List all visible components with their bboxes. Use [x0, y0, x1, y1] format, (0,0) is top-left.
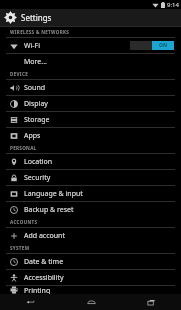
button[interactable]: Backup & reset [0, 202, 181, 217]
staticText: Add account [24, 231, 65, 241]
staticText: Sound [24, 83, 46, 93]
button[interactable]: Settings [0, 9, 181, 26]
button[interactable]: Recent apps [121, 294, 181, 310]
staticText: Accessibility [24, 273, 64, 283]
staticText: SYSTEM [10, 245, 30, 251]
button[interactable]: Security [0, 170, 181, 185]
button[interactable]: More... [0, 54, 181, 69]
button[interactable]: Home [61, 294, 121, 310]
staticText: WIRELESS & NETWORKS [10, 29, 70, 35]
staticText: Security [24, 173, 51, 183]
staticText: Date & time [24, 257, 64, 267]
staticText: Apps [24, 131, 41, 141]
button[interactable]: Add account [0, 228, 181, 243]
button[interactable]: Storage [0, 112, 181, 127]
button[interactable]: Back [0, 294, 61, 310]
button[interactable]: Date & time [0, 254, 181, 269]
staticText: PERSONAL [10, 145, 37, 151]
staticText: Language & input [24, 189, 83, 199]
button[interactable]: Wi-Fi toggle, on [130, 41, 174, 50]
staticText: Backup & reset [24, 205, 74, 215]
staticText: ACCOUNTS [10, 219, 38, 225]
staticText: ON [159, 42, 168, 49]
staticText: Display [24, 99, 48, 109]
button[interactable]: Sound [0, 80, 181, 95]
staticText: More... [24, 57, 47, 67]
button[interactable]: Wi-Fi [0, 38, 181, 53]
staticText: DEVICE [10, 71, 29, 77]
button[interactable]: Accessibility [0, 270, 181, 285]
button[interactable]: Printing [0, 286, 181, 294]
button[interactable]: Language & input [0, 186, 181, 201]
button[interactable]: Display [0, 96, 181, 111]
button[interactable]: Location [0, 154, 181, 169]
staticText: Location [24, 157, 53, 167]
staticText: 9:14 [167, 1, 179, 9]
staticText: Wi-Fi [24, 41, 41, 51]
button[interactable]: Apps [0, 128, 181, 143]
staticText: Settings [21, 12, 52, 23]
staticText: Storage [24, 115, 50, 125]
staticText: Printing [24, 286, 51, 294]
